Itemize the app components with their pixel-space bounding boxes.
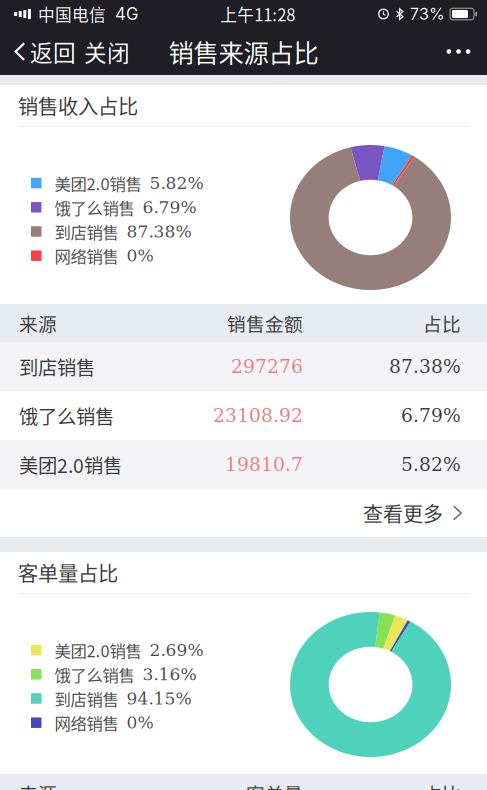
staticText: 87.38% [389,356,461,377]
button[interactable]: 查看更多 [0,489,487,537]
staticText: 美团2.0销售 [54,638,141,662]
staticText: 73% [410,4,445,24]
staticText: 饿了么销售 [54,195,134,219]
staticText: 美团2.0销售 [54,171,141,195]
staticText: 5.82% [401,454,461,475]
staticText: 网络销售 [54,244,118,267]
staticText: 销售收入占比 [18,91,138,120]
button[interactable]: 返回 [0,28,76,75]
staticText: 销售金额 [227,309,303,336]
staticText: 到店销售 [54,687,118,710]
staticText: 到店销售 [19,352,95,380]
staticText: 19810.7 [225,454,303,475]
staticText: 297276 [231,356,303,377]
staticText: 饿了么销售 [54,662,134,686]
staticText: 6.79% [401,405,461,426]
staticText: 94.15% [126,689,191,708]
staticText: 6.79% [142,197,196,217]
staticText: 来源 [19,779,57,790]
staticText: 4G [115,4,138,24]
staticText: 占比 [423,779,461,790]
staticText: 来源 [19,309,57,336]
staticText: 2.69% [149,640,203,660]
button[interactable]: 更多 [430,28,487,75]
staticText: 到店销售 [54,220,118,243]
staticText: 87.38% [126,222,191,241]
staticText: 0% [126,246,153,266]
staticText: 饿了么销售 [19,401,114,429]
staticText: 网络销售 [54,711,118,734]
staticText: 3.16% [142,664,196,684]
staticText: 查看更多 [363,498,443,527]
staticText: 0% [126,713,153,733]
button[interactable]: 关闭 [76,28,142,75]
staticText: 中国电信 [38,2,106,26]
staticText: 占比 [423,309,461,336]
staticText: 销售来源占比 [168,33,318,70]
staticText: 美团2.0销售 [19,450,122,478]
staticText: 23108.92 [213,405,303,426]
staticText: 上午11:28 [220,2,295,26]
staticText: 5.82% [149,173,203,193]
staticText: 客单量占比 [18,558,118,587]
staticText: 返回 [30,35,76,68]
staticText: 关闭 [84,35,130,68]
staticText: 客单量 [246,779,303,790]
